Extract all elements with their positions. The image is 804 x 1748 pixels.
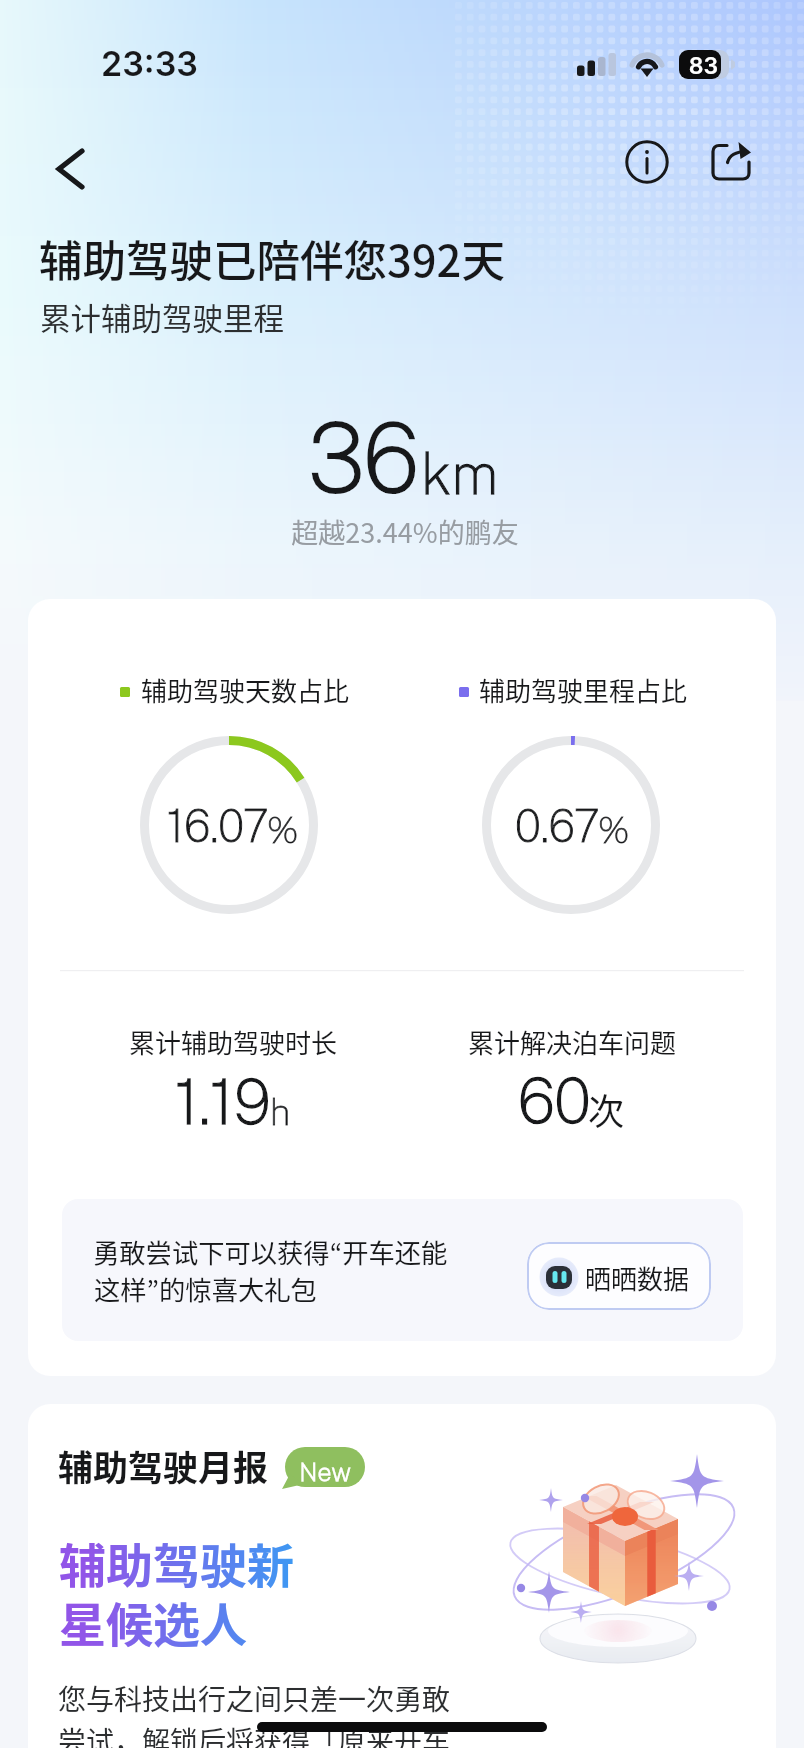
button[interactable]: 辅助驾驶月报 (28, 1404, 776, 1748)
staticText: % (267, 809, 299, 851)
button[interactable]: Share (702, 133, 762, 193)
staticText: 次 (588, 1083, 625, 1135)
staticText: h (270, 1091, 291, 1133)
staticText: 辅助驾驶天数占比 (141, 671, 350, 709)
staticText: km (421, 441, 499, 507)
staticText: 23:33 (101, 43, 198, 84)
staticText: % (598, 809, 630, 851)
staticText: 超越23.44%的鹏友 (195, 512, 615, 551)
staticText: 60 (518, 1063, 591, 1137)
staticText: % (598, 809, 630, 851)
staticText: 累计解决泊车问题 (407, 1023, 737, 1061)
staticText: 36 (308, 402, 420, 514)
staticText: 累计辅助驾驶时长 (68, 1023, 398, 1061)
staticText: % (267, 809, 299, 851)
staticText: 您与科技出行之间只差一次勇敢 (58, 1678, 451, 1719)
staticText: 1.19 (175, 1065, 271, 1138)
button[interactable]: Information (617, 132, 677, 192)
staticText: 晒晒数据 (585, 1259, 690, 1297)
staticText: 1.19 (175, 1065, 271, 1138)
button[interactable]: Back (38, 135, 102, 199)
button[interactable]: 晒晒数据 (527, 1242, 711, 1310)
staticText: 辅助驾驶新 (59, 1528, 294, 1596)
staticText: 勇敢尝试下可以获得“开车还能 (93, 1232, 448, 1270)
staticText: 16.07 (167, 800, 269, 852)
staticText: h (270, 1091, 291, 1133)
staticText: 累计辅助驾驶里程 (40, 295, 284, 339)
staticText: 辅助驾驶已陪伴您392天 (39, 227, 505, 290)
staticText: 36 (308, 402, 420, 514)
staticText: 星候选人 (59, 1587, 247, 1655)
staticText: 16.07 (167, 800, 269, 852)
staticText: 辅助驾驶月报 (58, 1440, 269, 1491)
staticText: 60 (518, 1063, 591, 1137)
staticText: 0.67 (515, 800, 600, 852)
staticText: 尝试，解锁后将获得「原来开车 (58, 1720, 451, 1748)
staticText: 辅助驾驶里程占比 (479, 671, 688, 709)
staticText: New (285, 1457, 365, 1486)
staticText: 83 (682, 52, 725, 80)
staticText: km (421, 441, 499, 507)
staticText: 0.67 (515, 800, 600, 852)
staticText: 这样”的惊喜大礼包 (94, 1269, 317, 1307)
